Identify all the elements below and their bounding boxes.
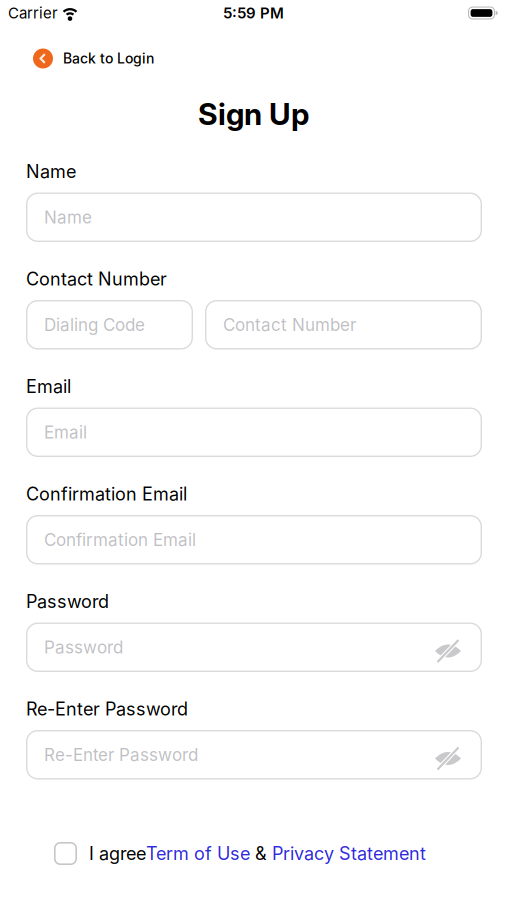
button[interactable] — [54, 842, 77, 865]
staticText: Re-Enter Password — [44, 744, 198, 765]
staticText: Privacy Statement — [272, 843, 426, 864]
button[interactable]: Name — [26, 192, 482, 242]
button[interactable] — [433, 745, 463, 771]
staticText: Term of Use — [146, 843, 250, 864]
button[interactable]: Back to Login — [33, 48, 154, 68]
staticText: Contact Number — [223, 314, 356, 335]
staticText: Contact Number — [26, 268, 167, 290]
staticText: I agree — [89, 843, 146, 864]
staticText: Confirmation Email — [26, 483, 187, 505]
staticText: Sign Up — [198, 96, 309, 132]
button[interactable]: Contact Number — [205, 300, 482, 349]
staticText: Name — [44, 207, 92, 228]
staticText: Back to Login — [63, 50, 154, 67]
button[interactable]: Term of Use — [146, 843, 250, 864]
button[interactable]: Re-Enter Password — [26, 730, 482, 779]
button[interactable]: Privacy Statement — [272, 843, 426, 864]
staticText: Dialing Code — [44, 314, 145, 335]
staticText: Carrier — [8, 4, 58, 22]
button[interactable]: Email — [26, 407, 482, 457]
staticText: Confirmation Email — [44, 529, 196, 550]
staticText: Email — [44, 422, 87, 443]
staticText: Re-Enter Password — [26, 698, 188, 720]
button[interactable] — [433, 638, 463, 664]
staticText: & — [250, 843, 272, 864]
button[interactable]: Dialing Code — [26, 300, 193, 349]
staticText: Email — [26, 376, 71, 397]
button[interactable]: Confirmation Email — [26, 515, 482, 564]
staticText: Password — [44, 637, 123, 658]
staticText: Password — [26, 591, 109, 612]
button[interactable]: Password — [26, 622, 482, 672]
staticText: 5:59 PM — [223, 4, 284, 22]
staticText: Name — [26, 161, 76, 182]
